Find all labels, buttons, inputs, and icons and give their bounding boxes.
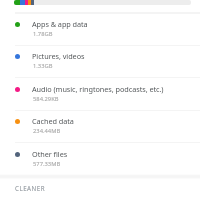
button[interactable]: CLEANER (0, 178, 200, 200)
staticText: Other files (32, 149, 68, 159)
button[interactable]: Apps & app data (0, 13, 200, 46)
staticText: Pictures, videos (32, 51, 85, 61)
staticText: Audio (music, ringtones, podcasts, etc.) (32, 84, 164, 94)
button[interactable]: Pictures, videos (0, 45, 200, 78)
staticText: 234.44MB (33, 127, 61, 135)
staticText: 1.78GB (33, 30, 53, 38)
button[interactable]: Other files (0, 143, 200, 176)
button[interactable]: Audio (music, ringtones, podcasts, etc.) (0, 78, 200, 111)
staticText: 584.29KB (33, 95, 59, 103)
staticText: 1.33GB (33, 62, 53, 70)
button[interactable]: Cached data (0, 110, 200, 143)
staticText: CLEANER (15, 184, 46, 192)
staticText: 577.33MB (33, 160, 61, 168)
staticText: Cached data (32, 116, 74, 126)
staticText: Apps & app data (32, 19, 88, 29)
